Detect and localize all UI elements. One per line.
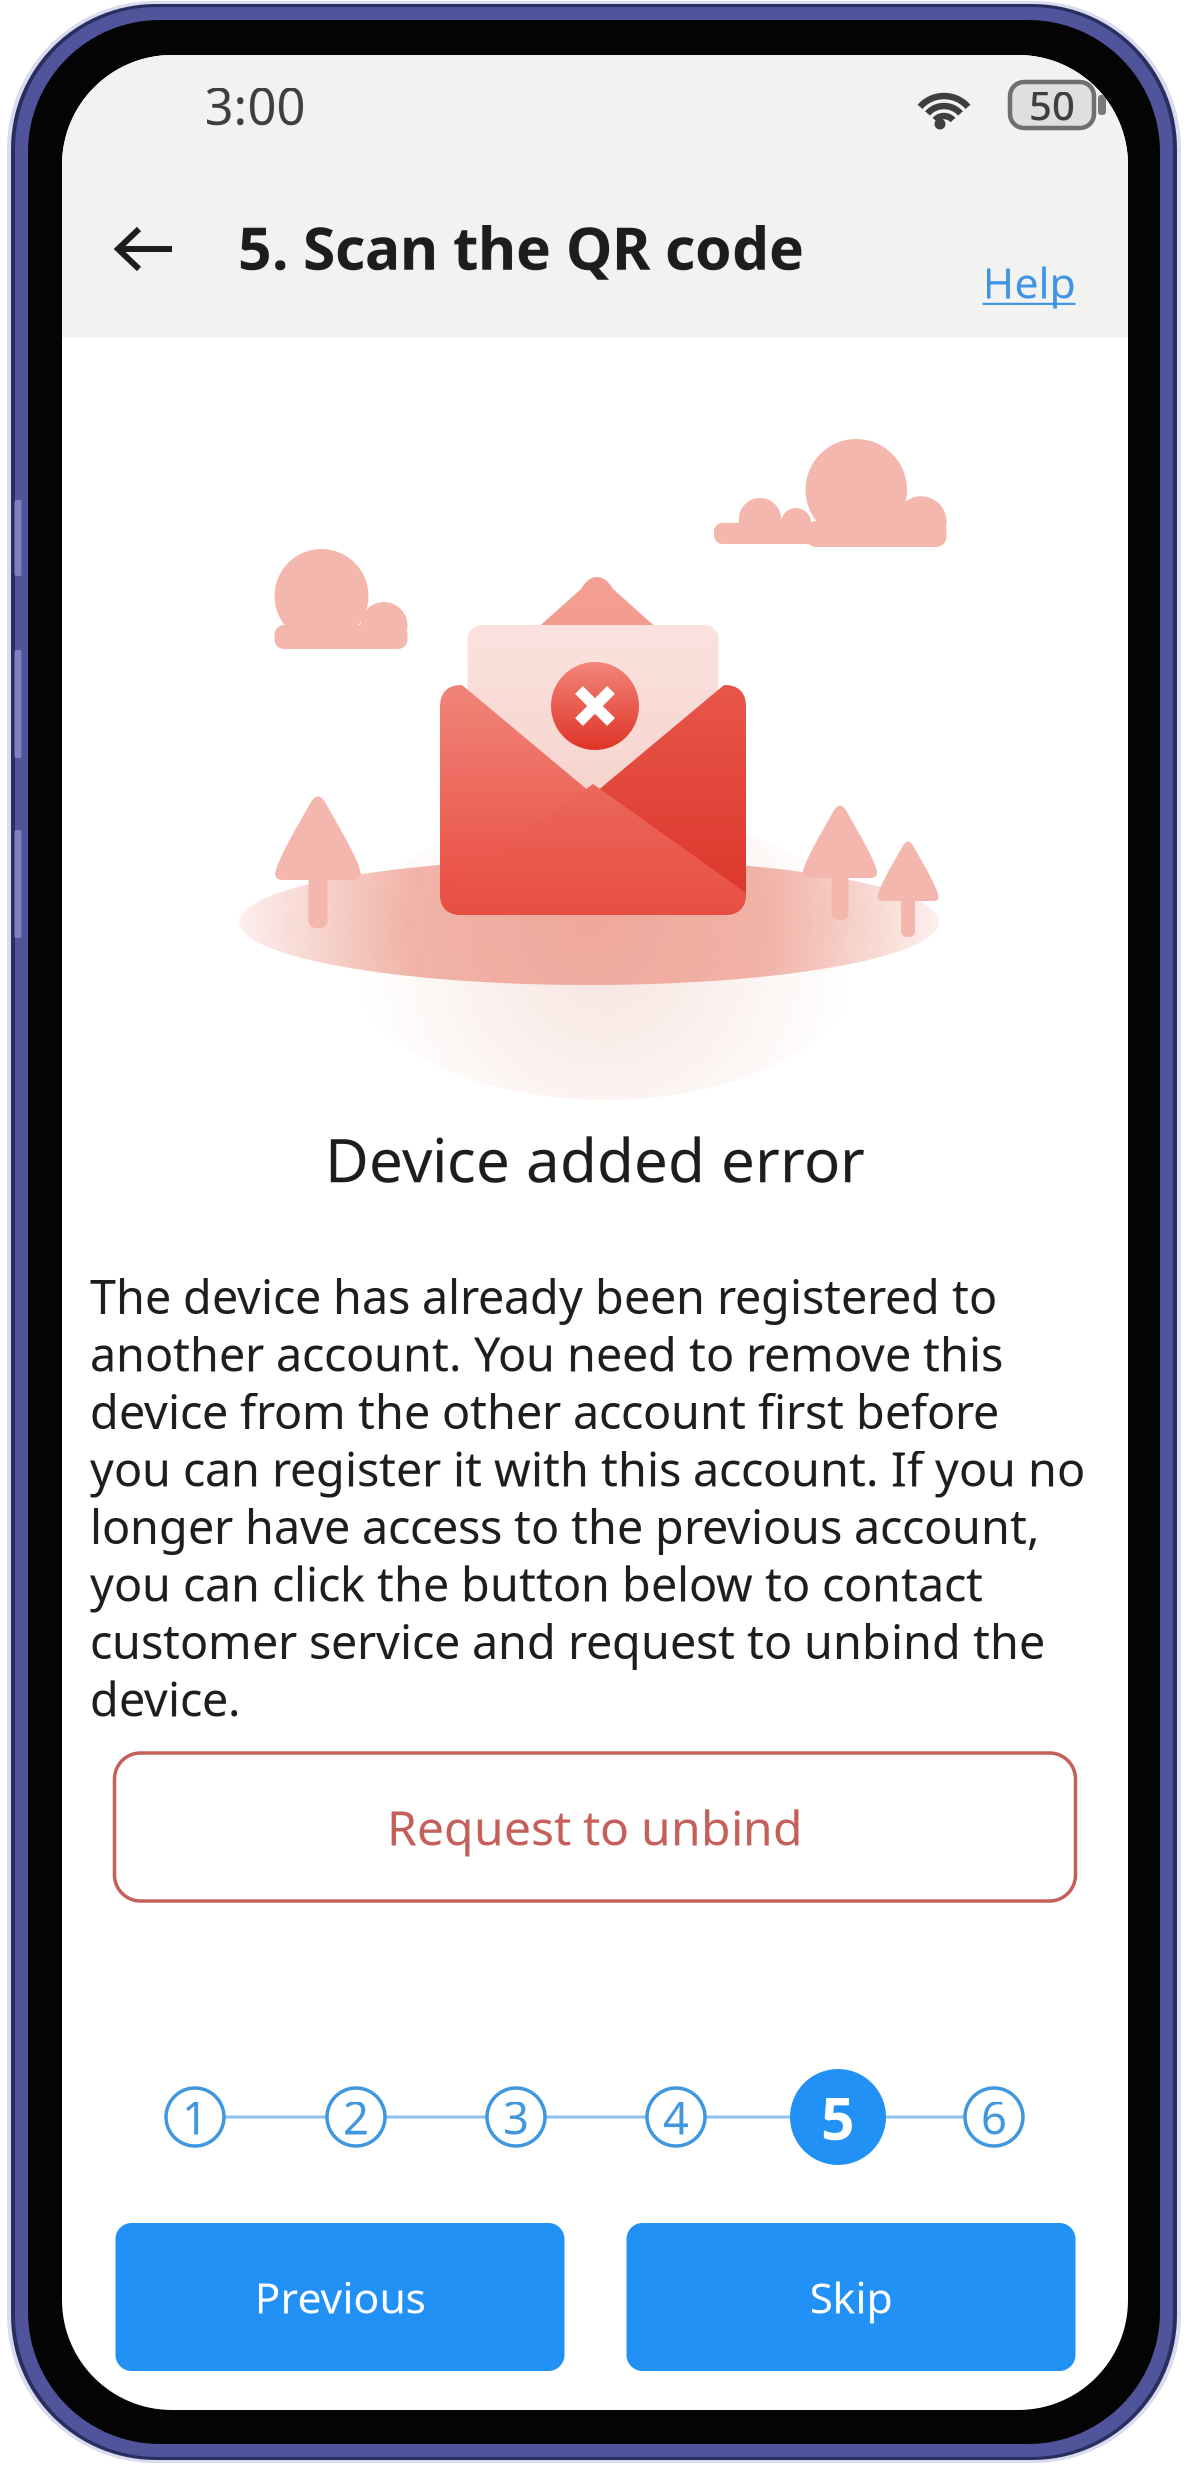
staticText: 5 xyxy=(821,2078,855,2156)
staticText: 6 xyxy=(981,2087,1007,2147)
button[interactable]: Previous xyxy=(115,2223,564,2371)
staticText: Device added error xyxy=(325,1119,865,1199)
staticText: 1 xyxy=(182,2087,208,2147)
staticText: 50 xyxy=(1029,78,1075,131)
button[interactable]: Skip xyxy=(626,2223,1075,2371)
staticText: Help xyxy=(982,254,1075,310)
staticText: 2 xyxy=(343,2087,369,2147)
button[interactable]: Back xyxy=(97,205,193,293)
button[interactable]: Help xyxy=(969,252,1089,312)
staticText: Skip xyxy=(809,2269,892,2325)
staticText: 4 xyxy=(663,2087,689,2147)
staticText: Request to unbind xyxy=(387,1795,803,1859)
staticText: The device has already been registered t… xyxy=(90,1265,1085,1729)
staticText: 3 xyxy=(503,2087,529,2147)
button[interactable]: Request to unbind xyxy=(114,1753,1075,1901)
staticText: 5. Scan the QR code xyxy=(238,208,804,286)
staticText: 3:00 xyxy=(204,71,305,139)
staticText: Previous xyxy=(254,2269,425,2325)
